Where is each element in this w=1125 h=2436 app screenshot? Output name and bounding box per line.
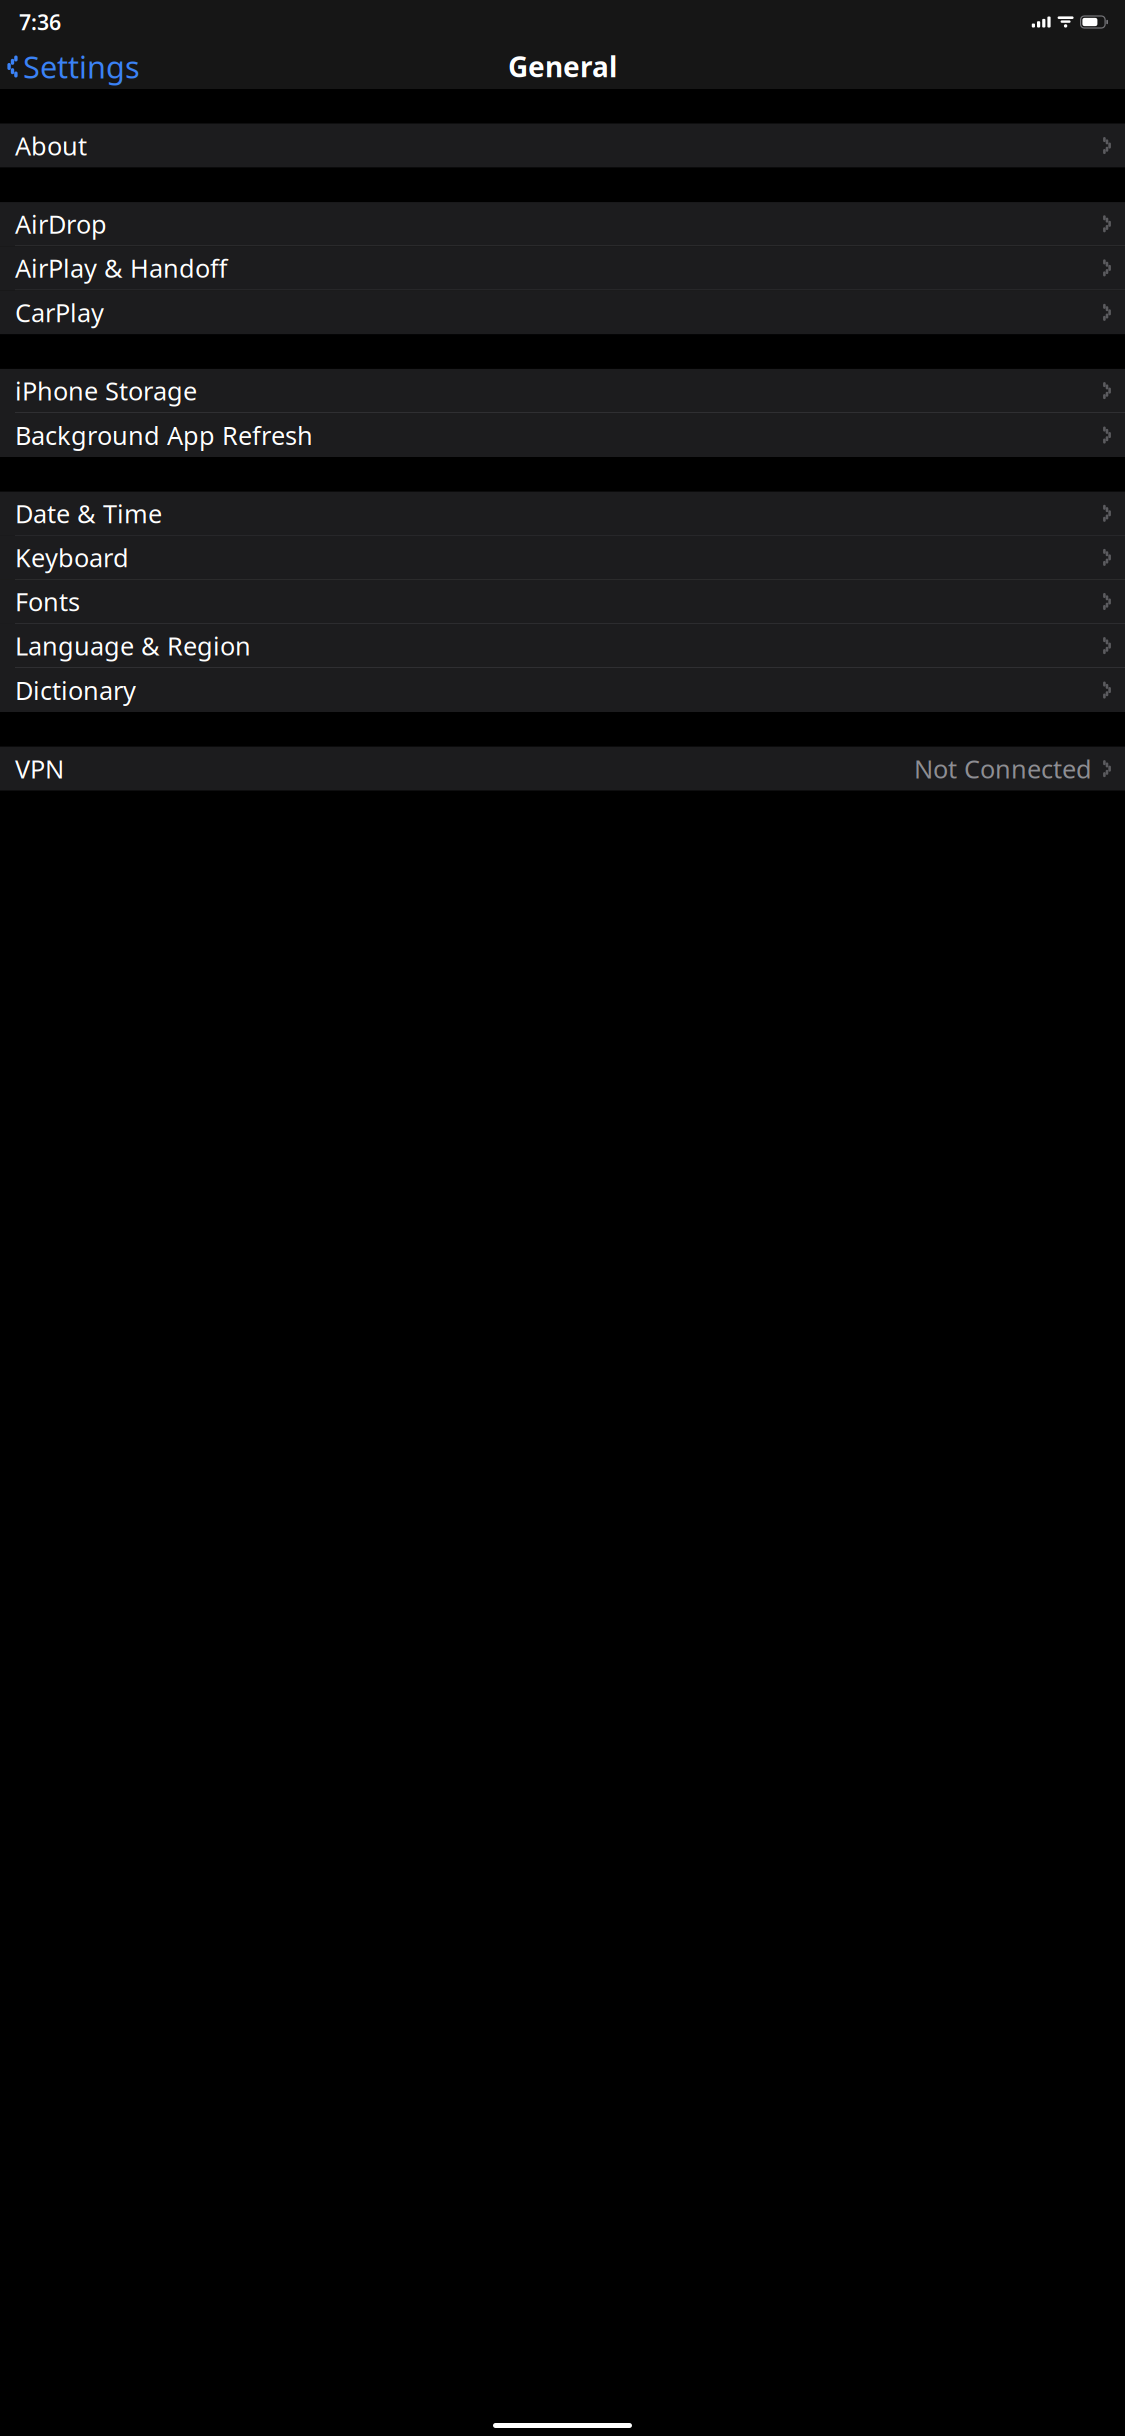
staticText: About	[15, 129, 87, 162]
staticText: AirPlay & Handoff	[15, 251, 227, 285]
button[interactable]: VPN	[0, 747, 1125, 791]
button[interactable]: Background App Refresh	[0, 413, 1125, 457]
button[interactable]: Fonts	[0, 580, 1125, 624]
staticText: Language & Region	[15, 629, 251, 662]
button[interactable]: Date & Time	[0, 492, 1125, 536]
staticText: Settings	[23, 46, 140, 87]
staticText: Fonts	[15, 585, 80, 618]
button[interactable]: AirPlay & Handoff	[0, 246, 1125, 290]
staticText: VPN	[15, 752, 64, 785]
staticText: Not Connected	[914, 752, 1092, 785]
staticText: AirDrop	[15, 207, 107, 241]
button[interactable]: Settings	[0, 39, 140, 94]
staticText: CarPlay	[15, 295, 104, 329]
button[interactable]: Keyboard	[0, 536, 1125, 580]
button[interactable]: About	[0, 123, 1125, 168]
staticText: General	[508, 48, 617, 85]
staticText: Dictionary	[15, 673, 136, 707]
button[interactable]: CarPlay	[0, 290, 1125, 334]
staticText: 7:36	[19, 8, 61, 36]
button[interactable]: AirDrop	[0, 202, 1125, 246]
staticText: Date & Time	[15, 496, 162, 530]
staticText: Background App Refresh	[15, 418, 313, 452]
button[interactable]: Dictionary	[0, 668, 1125, 712]
button[interactable]: Language & Region	[0, 624, 1125, 668]
staticText: Keyboard	[15, 541, 129, 574]
button[interactable]: iPhone Storage	[0, 369, 1125, 413]
staticText: iPhone Storage	[15, 374, 197, 407]
